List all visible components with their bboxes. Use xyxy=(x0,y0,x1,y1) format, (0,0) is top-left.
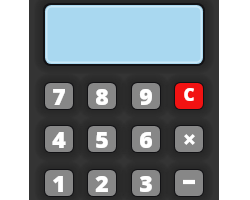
button[interactable]: 4 xyxy=(44,125,74,153)
button[interactable]: C xyxy=(174,82,204,110)
button[interactable]: Multiply xyxy=(174,125,204,153)
other: Minus xyxy=(183,177,195,187)
staticText: 2 xyxy=(95,167,109,195)
button[interactable]: 3 xyxy=(131,169,161,197)
button[interactable]: Minus xyxy=(174,169,204,197)
staticText: 5 xyxy=(95,123,109,151)
staticText: 4 xyxy=(52,123,66,151)
button[interactable]: 5 xyxy=(87,125,117,153)
staticText: 6 xyxy=(139,123,153,151)
staticText: C xyxy=(183,83,195,106)
button[interactable]: 1 xyxy=(44,169,74,197)
button[interactable]: 7 xyxy=(44,82,74,110)
staticText: 7 xyxy=(52,80,66,108)
staticText: 1 xyxy=(52,167,66,195)
button[interactable]: 8 xyxy=(87,82,117,110)
button[interactable]: 6 xyxy=(131,125,161,153)
other: Calculator display xyxy=(43,3,205,66)
staticText: 9 xyxy=(139,80,153,108)
other: Multiply xyxy=(184,134,195,145)
button[interactable]: 9 xyxy=(131,82,161,110)
staticText: 3 xyxy=(139,167,153,195)
staticText: 8 xyxy=(95,80,109,108)
button[interactable]: 2 xyxy=(87,169,117,197)
